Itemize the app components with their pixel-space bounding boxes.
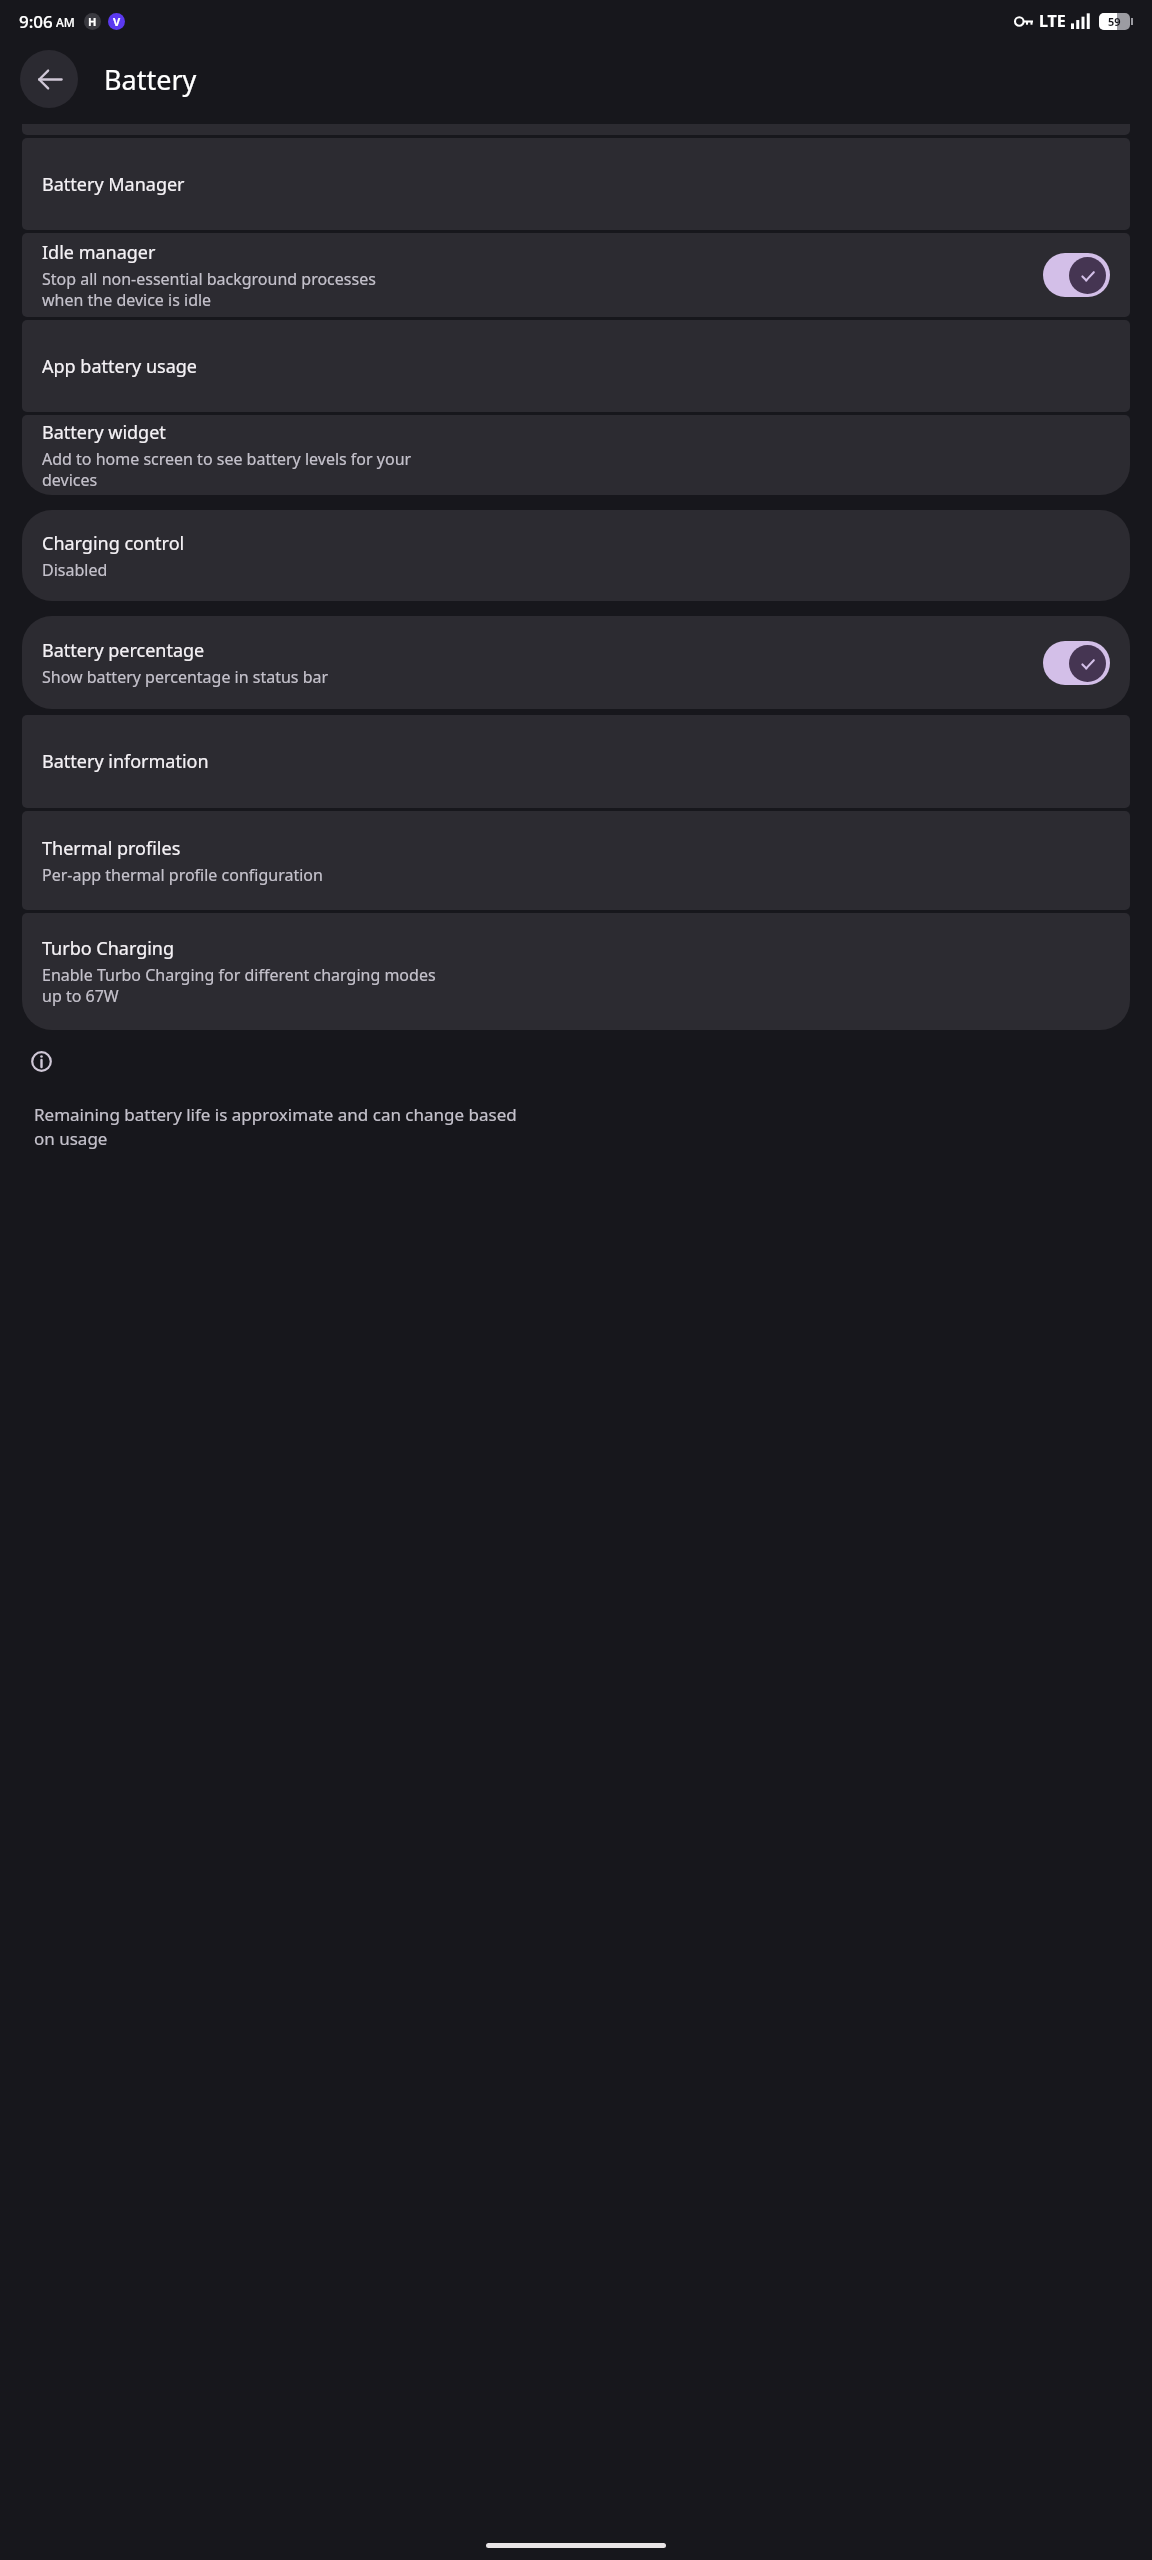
button[interactable]: App battery usage bbox=[22, 320, 1130, 412]
button[interactable]: Thermal profiles bbox=[22, 811, 1130, 910]
staticText: LTE bbox=[1039, 10, 1066, 32]
staticText: 59 bbox=[1108, 14, 1121, 29]
staticText: Charging control bbox=[42, 531, 185, 556]
button[interactable]: Battery Manager bbox=[22, 138, 1130, 230]
staticText: Battery percentage bbox=[42, 638, 205, 663]
button[interactable]: Back bbox=[20, 50, 78, 108]
button[interactable]: Battery widget bbox=[22, 415, 1130, 495]
staticText: Thermal profiles bbox=[42, 836, 181, 861]
staticText: Idle manager bbox=[42, 240, 156, 265]
staticText: 9:06 bbox=[19, 10, 53, 33]
staticText: App battery usage bbox=[42, 354, 197, 379]
staticText: V bbox=[113, 14, 121, 29]
staticText: Battery widget bbox=[42, 420, 166, 445]
staticText: H bbox=[88, 14, 97, 29]
staticText: Per-app thermal profile configuration bbox=[42, 864, 323, 886]
staticText: AM bbox=[56, 14, 75, 30]
staticText: Remaining battery life is approximate an… bbox=[34, 1103, 517, 1150]
staticText: Show battery percentage in status bar bbox=[42, 666, 329, 688]
button[interactable]: Idle manager bbox=[22, 233, 1130, 317]
staticText: Enable Turbo Charging for different char… bbox=[42, 964, 436, 1007]
button[interactable]: Turbo Charging bbox=[22, 913, 1130, 1030]
staticText: Disabled bbox=[42, 559, 108, 581]
button[interactable]: Toggle bbox=[1043, 253, 1110, 297]
button[interactable]: Battery percentage bbox=[22, 616, 1130, 709]
staticText: Battery information bbox=[42, 749, 209, 774]
button[interactable]: Toggle bbox=[1043, 641, 1110, 685]
staticText: Battery bbox=[104, 61, 197, 98]
other: Information bbox=[31, 1051, 52, 1072]
button[interactable]: Battery information bbox=[22, 715, 1130, 808]
staticText: Add to home screen to see battery levels… bbox=[42, 448, 412, 491]
staticText: Battery Manager bbox=[42, 172, 185, 197]
staticText: Turbo Charging bbox=[42, 936, 175, 961]
button[interactable]: Charging control bbox=[22, 510, 1130, 601]
staticText: Stop all non-essential background proces… bbox=[42, 268, 376, 311]
